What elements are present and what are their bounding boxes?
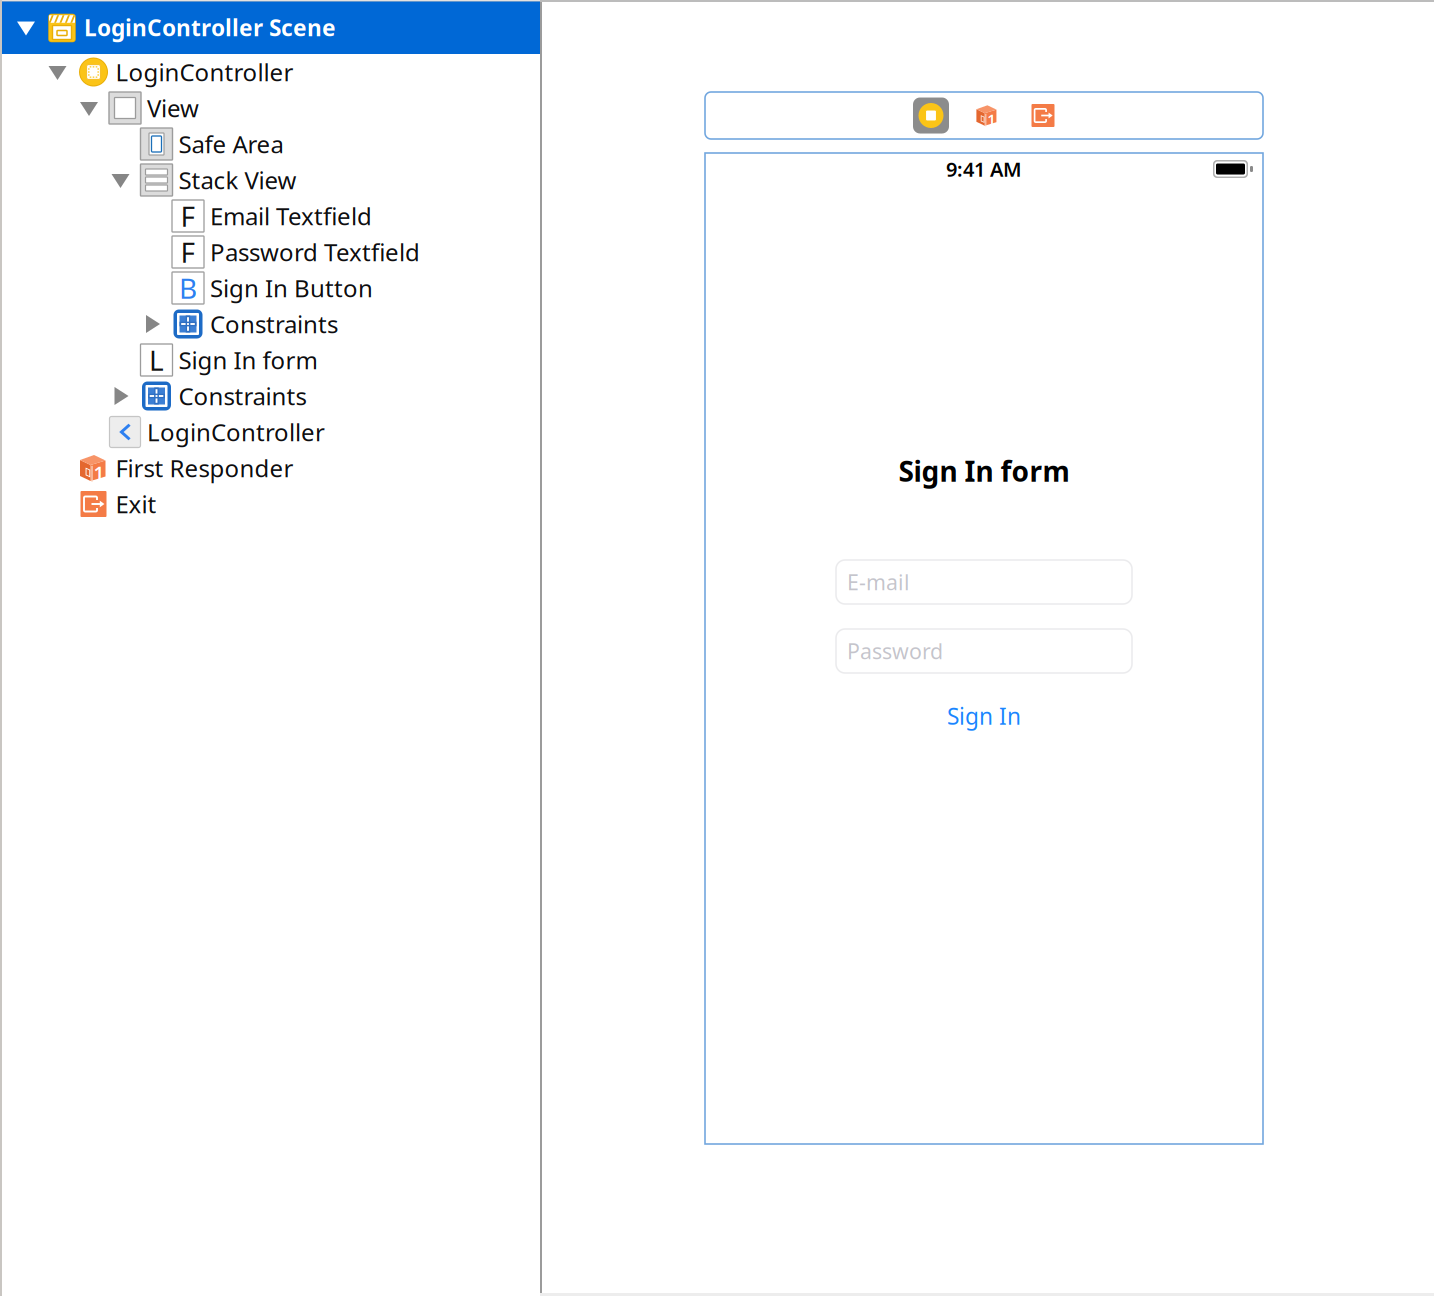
button[interactable]: B — [0, 270, 540, 306]
button[interactable]: F — [0, 198, 540, 234]
staticText: F — [180, 233, 195, 271]
button[interactable]: View — [0, 90, 540, 126]
staticText: L — [149, 341, 164, 379]
staticText: First Responder — [115, 452, 293, 484]
staticText: Password — [847, 637, 943, 665]
staticText: LoginController Scene — [84, 12, 336, 42]
staticText: Password Textfield — [210, 236, 420, 268]
staticText: Sign In — [947, 701, 1021, 731]
staticText: B — [179, 269, 197, 307]
staticText: LoginController — [115, 56, 293, 88]
staticText: Constraints — [210, 308, 338, 340]
button[interactable]: E-mail — [836, 560, 1132, 604]
button[interactable]: Constraints — [0, 306, 540, 342]
button[interactable]: L — [0, 342, 540, 378]
button[interactable]: Exit — [0, 486, 540, 522]
button[interactable]: LoginController Scene — [0, 1, 540, 54]
staticText: Sign In form — [178, 344, 317, 376]
staticText: 1 — [987, 109, 995, 129]
button[interactable]: F — [0, 234, 540, 270]
staticText: LoginController — [147, 416, 325, 448]
staticText: F — [180, 197, 195, 235]
button[interactable]: LoginController — [0, 414, 540, 450]
staticText: 1 — [93, 460, 104, 485]
button[interactable]: Safe Area — [0, 126, 540, 162]
staticText: Sign In Button — [210, 272, 373, 304]
staticText: Email Textfield — [210, 200, 372, 232]
button[interactable]: Password — [836, 629, 1132, 673]
button[interactable]: 1 — [0, 450, 540, 486]
staticText: Sign In form — [898, 452, 1069, 490]
button[interactable]: First Responder — [975, 97, 999, 133]
staticText: 9:41 AM — [946, 156, 1022, 182]
button[interactable]: LoginController — [0, 54, 540, 90]
staticText: Exit — [115, 488, 156, 520]
button[interactable]: Constraints — [0, 378, 540, 414]
button[interactable]: Sign In — [836, 701, 1132, 731]
staticText: View — [147, 92, 199, 124]
button[interactable]: Exit — [1031, 97, 1055, 133]
staticText: Constraints — [178, 380, 306, 412]
staticText: Stack View — [178, 164, 296, 196]
staticText: E-mail — [847, 568, 910, 596]
staticText: Safe Area — [178, 128, 283, 160]
button[interactable]: Stack View — [0, 162, 540, 198]
button[interactable]: LoginController — [913, 97, 949, 133]
